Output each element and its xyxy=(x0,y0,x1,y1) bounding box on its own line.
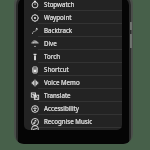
button[interactable]: Waypoint xyxy=(24,11,122,23)
staticText: Stopwatch xyxy=(44,0,75,8)
button[interactable]: Torch xyxy=(24,50,122,62)
button[interactable]: Translate xyxy=(24,89,122,101)
button[interactable]: Stopwatch xyxy=(24,0,122,10)
button[interactable]: Shortcut xyxy=(24,63,122,75)
staticText: Waypoint xyxy=(44,13,72,21)
staticText: Dive xyxy=(44,39,57,47)
staticText: Shortcut xyxy=(44,65,69,73)
button[interactable]: Recognise Music xyxy=(24,115,122,127)
staticText: Torch xyxy=(44,52,60,60)
staticText: Backtrack xyxy=(44,26,73,34)
button[interactable]: Backtrack xyxy=(24,24,122,36)
button[interactable]: Accessibility xyxy=(24,102,122,114)
button[interactable]: Dive xyxy=(24,37,122,49)
staticText: Translate xyxy=(44,91,71,99)
button[interactable]: Voice Memo xyxy=(24,76,122,88)
staticText: Accessibility xyxy=(44,104,79,112)
staticText: Recognise Music xyxy=(44,117,93,125)
staticText: Voice Memo xyxy=(44,78,80,86)
button[interactable]: None xyxy=(24,128,122,130)
